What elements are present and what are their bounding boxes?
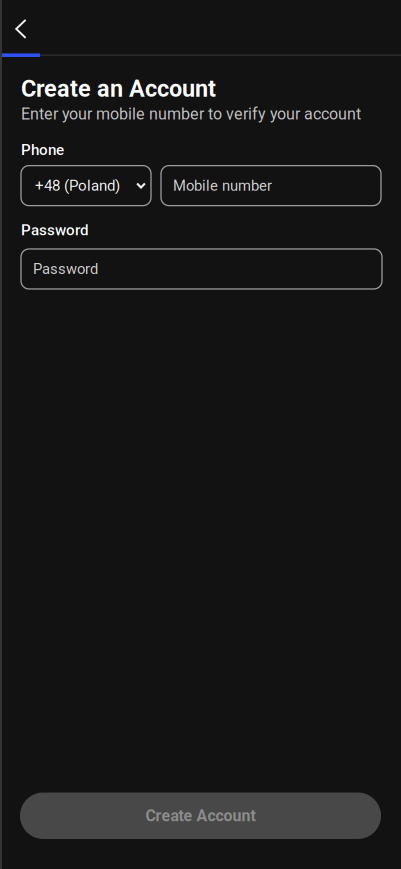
staticText: Mobile number [173, 177, 272, 194]
button[interactable]: Create Account [20, 792, 381, 839]
button[interactable]: Back [0, 0, 45, 55]
staticText: Password [21, 221, 89, 239]
button[interactable]: +48 (Poland) [21, 166, 151, 206]
button[interactable]: Password [21, 249, 382, 289]
button[interactable]: Mobile number [161, 166, 381, 206]
staticText: Phone [21, 141, 64, 159]
staticText: Create Account [145, 806, 255, 825]
staticText: +48 (Poland) [35, 177, 120, 194]
staticText: Password [33, 260, 98, 278]
staticText: Create an Account [21, 75, 216, 102]
staticText: Enter your mobile number to verify your … [21, 104, 361, 123]
